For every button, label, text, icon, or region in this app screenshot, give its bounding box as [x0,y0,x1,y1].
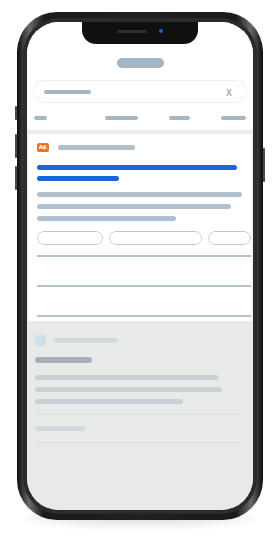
button[interactable] [208,231,251,245]
button[interactable]: Clear search [33,80,247,103]
button[interactable] [169,114,190,122]
staticText: Ad. [39,144,48,151]
button[interactable] [109,231,202,245]
button[interactable] [35,335,118,346]
button[interactable]: Ad. [29,134,251,321]
staticText: X [226,86,232,98]
button[interactable] [105,114,138,122]
button[interactable] [117,58,164,68]
button[interactable] [37,231,103,245]
button[interactable] [34,114,47,122]
button[interactable]: Clear search [222,85,236,99]
button[interactable] [221,114,246,122]
